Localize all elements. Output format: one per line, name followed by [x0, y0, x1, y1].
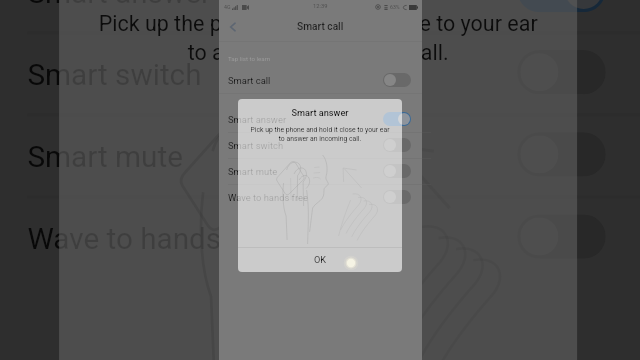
- staticText: Smart answer: [238, 107, 402, 118]
- button[interactable]: Wave to hands free: [0, 195, 640, 278]
- button[interactable]: Smart switch: [219, 132, 422, 158]
- staticText: 12:39: [313, 3, 328, 10]
- button[interactable]: Enabled: [383, 112, 411, 126]
- button[interactable]: Disabled: [383, 138, 411, 152]
- button[interactable]: Smart answer: [0, 0, 640, 31]
- button[interactable]: Disabled: [383, 73, 411, 87]
- staticText: Pick up the phone and hold it close to y…: [59, 12, 577, 66]
- staticText: Smart answer: [27, 0, 214, 9]
- staticText: 63%: [390, 4, 400, 10]
- button[interactable]: Smart switch: [0, 31, 640, 113]
- staticText: Tap list to learn: [228, 55, 271, 62]
- button[interactable]: Disabled: [383, 164, 411, 178]
- staticText: Smart answer: [228, 114, 287, 125]
- button[interactable]: Disabled: [517, 214, 606, 259]
- staticText: 4G: [224, 4, 231, 10]
- staticText: Wave to hands free: [228, 192, 308, 203]
- staticText: Smart mute: [27, 139, 185, 173]
- button[interactable]: Disabled: [517, 50, 606, 94]
- button[interactable]: Disabled: [383, 190, 411, 204]
- button[interactable]: Smart call: [219, 67, 422, 93]
- button[interactable]: Smart mute: [0, 113, 640, 195]
- staticText: Smart switch: [27, 56, 204, 91]
- staticText: Pick up the phone and hold it close to y…: [238, 126, 402, 143]
- button[interactable]: Wave to hands free: [219, 184, 422, 210]
- button[interactable]: Smart answer: [219, 106, 422, 132]
- staticText: Smart call: [228, 75, 271, 86]
- staticText: Smart switch: [228, 140, 284, 151]
- button[interactable]: Enabled: [517, 0, 606, 12]
- staticText: Smart call: [297, 21, 344, 33]
- button[interactable]: Disabled: [517, 132, 606, 176]
- staticText: OK: [314, 254, 327, 265]
- button[interactable]: Smart mute: [219, 158, 422, 184]
- staticText: Smart mute: [228, 166, 278, 177]
- button[interactable]: Back: [225, 19, 241, 35]
- staticText: Wave to hands free: [27, 221, 280, 255]
- button[interactable]: OK: [238, 247, 402, 272]
